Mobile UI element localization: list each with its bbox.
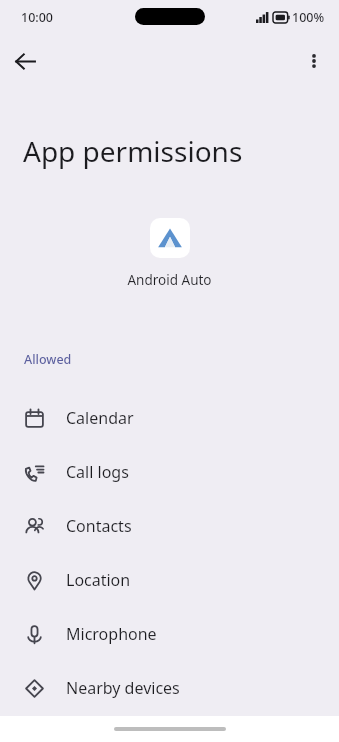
- staticText: Allowed: [24, 351, 72, 368]
- button[interactable]: More options: [294, 41, 334, 81]
- staticText: Nearby devices: [66, 677, 180, 699]
- button[interactable]: Microphone: [0, 607, 339, 661]
- button[interactable]: Location: [0, 553, 339, 607]
- staticText: 10:00: [21, 9, 54, 26]
- staticText: Calendar: [66, 407, 134, 429]
- staticText: Android Auto: [127, 271, 212, 289]
- staticText: Contacts: [66, 515, 132, 537]
- staticText: App permissions: [23, 132, 243, 170]
- staticText: 100%: [292, 9, 325, 26]
- staticText: Call logs: [66, 461, 129, 483]
- button[interactable]: Back: [5, 41, 45, 81]
- staticText: Microphone: [66, 623, 157, 645]
- button[interactable]: Calendar: [0, 391, 339, 445]
- button[interactable]: Call logs: [0, 445, 339, 499]
- button[interactable]: Nearby devices: [0, 661, 339, 715]
- staticText: Location: [66, 569, 131, 591]
- button[interactable]: Contacts: [0, 499, 339, 553]
